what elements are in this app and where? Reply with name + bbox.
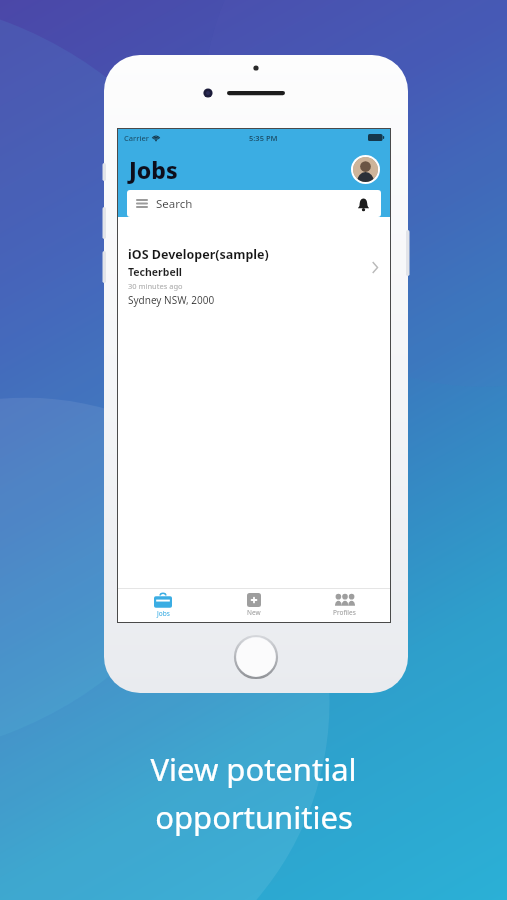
staticText: opportunities — [155, 796, 353, 838]
staticText: 30 minutes ago — [128, 281, 183, 291]
staticText: Profiles — [333, 608, 356, 617]
staticText: Sydney NSW, 2000 — [128, 293, 215, 307]
button[interactable]: Profiles — [299, 588, 390, 622]
button[interactable]: New — [208, 588, 299, 622]
button[interactable]: Profile — [353, 157, 378, 182]
staticText: Techerbell — [128, 265, 182, 279]
staticText: 5:35 PM — [249, 133, 278, 143]
staticText: Jobs — [129, 154, 178, 185]
staticText: iOS Developer(sample) — [128, 246, 269, 263]
staticText: Carrier — [124, 133, 149, 143]
staticText: View potential — [150, 748, 357, 790]
button[interactable]: Notifications — [354, 195, 372, 213]
staticText: Search — [156, 196, 193, 212]
staticText: Jobs — [157, 609, 170, 618]
button[interactable]: iOS Developer(sample) — [118, 244, 390, 313]
staticText: New — [247, 608, 261, 617]
button[interactable]: Search — [127, 190, 381, 217]
button[interactable]: Jobs — [118, 588, 208, 622]
